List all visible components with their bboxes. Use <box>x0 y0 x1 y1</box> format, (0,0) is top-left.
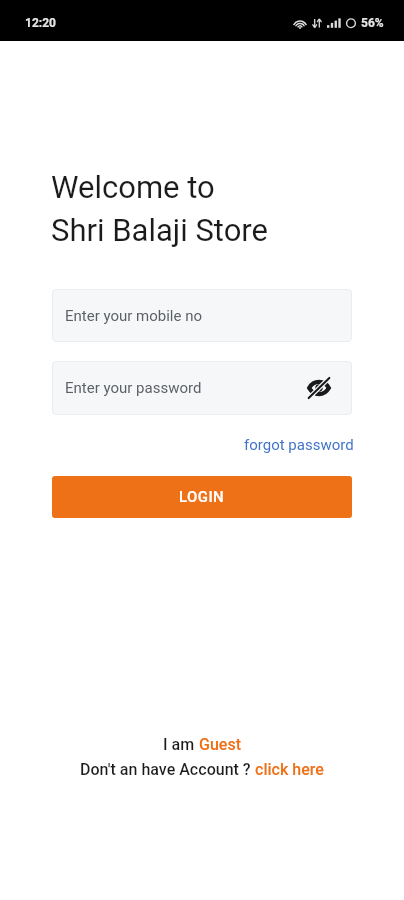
staticText: Enter your mobile no <box>65 307 203 325</box>
staticText: click here <box>255 760 324 779</box>
button[interactable]: Don't an have Account ? <box>80 760 324 779</box>
staticText: Guest <box>199 735 241 754</box>
staticText: Shri Balaji Store <box>51 212 269 248</box>
staticText: LOGIN <box>179 488 225 506</box>
button[interactable]: Enter your password <box>52 361 352 415</box>
staticText: Welcome to <box>51 169 215 205</box>
button[interactable]: forgot password <box>244 436 354 454</box>
staticText: Don't an have Account ? <box>80 760 255 779</box>
staticText: 56% <box>361 16 384 30</box>
button[interactable]: LOGIN <box>52 476 352 518</box>
button[interactable]: Show password <box>303 372 335 404</box>
staticText: Enter your password <box>65 379 202 397</box>
staticText: I am <box>163 735 199 754</box>
staticText: 12:20 <box>25 16 56 30</box>
button[interactable]: I am <box>163 735 241 754</box>
button[interactable]: Enter your mobile no <box>52 289 352 342</box>
